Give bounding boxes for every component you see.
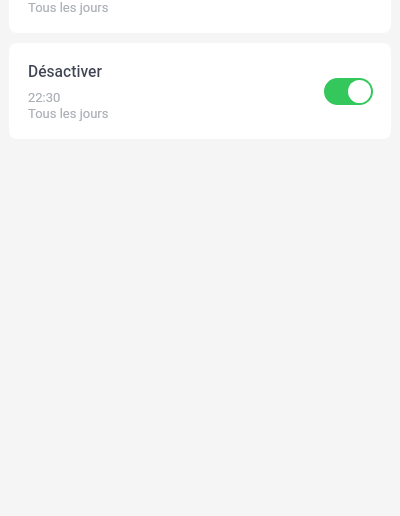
- button[interactable]: Réveil: [9, 0, 391, 33]
- staticText: 22:30: [28, 90, 61, 105]
- button[interactable]: Activer ou désactiver Désactiver: [324, 78, 373, 105]
- staticText: Désactiver: [28, 63, 102, 81]
- button[interactable]: Désactiver: [9, 43, 391, 139]
- staticText: Tous les jours: [28, 0, 109, 15]
- staticText: Tous les jours: [28, 106, 109, 121]
